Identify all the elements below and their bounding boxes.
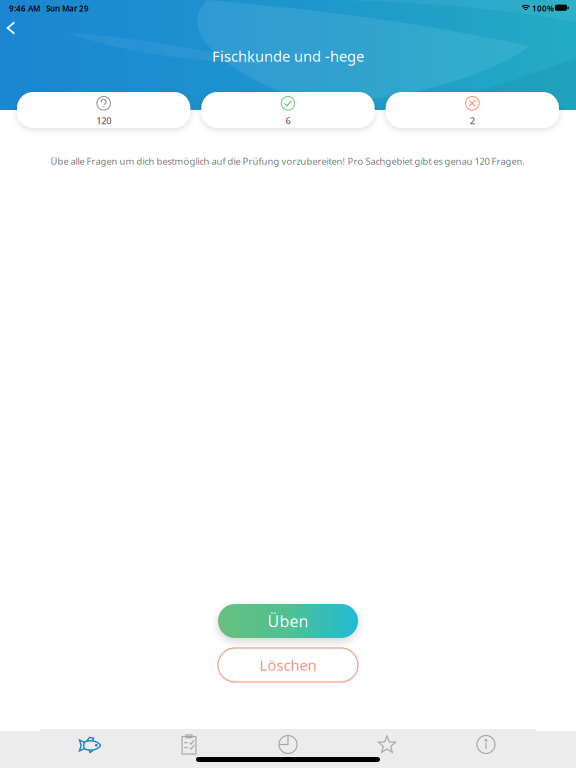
staticText: 100% [532,3,554,14]
button[interactable]: Prüfung [139,729,238,760]
button[interactable]: Back [0,9,30,47]
button[interactable]: Löschen [218,648,358,682]
staticText: Übe alle Fragen um dich bestmöglich auf … [50,155,525,167]
staticText: Löschen [259,655,316,675]
button[interactable]: Statistik [238,729,337,760]
staticText: 2 [470,114,475,127]
button[interactable]: Info [436,729,535,760]
button[interactable]: 2 [386,92,559,128]
button[interactable]: 6 [201,92,375,128]
staticText: 120 [96,114,111,127]
staticText: Fischkunde und -hege [212,46,364,66]
staticText: Sun Mar 29 [46,3,89,14]
staticText: Üben [267,610,308,632]
staticText: 9:46 AM [9,3,40,14]
button[interactable]: Favoriten [337,729,436,760]
staticText: 6 [285,114,290,127]
button[interactable]: Fische [40,729,139,760]
button[interactable]: 120 [17,92,190,128]
button[interactable]: Üben [218,604,358,638]
